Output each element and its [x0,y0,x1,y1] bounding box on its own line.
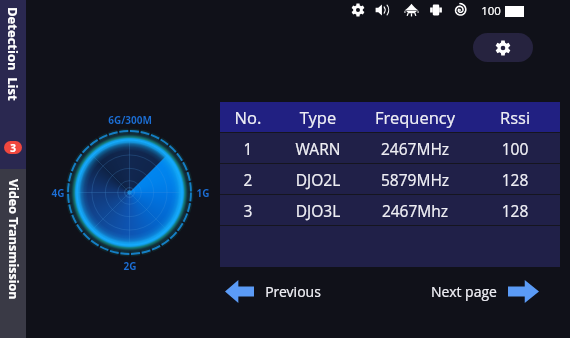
staticText: Frequency [360,106,470,128]
staticText: 3 [220,200,276,221]
staticText: 5879MHz [360,169,470,190]
staticText: 1G [191,186,215,200]
button[interactable] [0,0,26,169]
button[interactable] [0,169,26,338]
staticText: 128 [470,200,560,221]
staticText: Rssi [470,106,560,128]
staticText: 4G [46,186,70,200]
staticText: Type [276,106,360,128]
staticText: 100 [481,3,501,17]
button[interactable]: Next page [431,278,539,304]
button[interactable]: 3 [220,195,560,225]
staticText: 100 [470,138,560,159]
staticText: DJO3L [276,200,360,221]
staticText: Next page [431,282,497,301]
staticText: 2 [220,169,276,190]
staticText: 6G/300M [104,113,156,127]
button[interactable]: 2 [220,164,560,194]
staticText: No. [220,106,276,128]
staticText: 1 [220,138,276,159]
staticText: 128 [470,169,560,190]
button[interactable]: Settings [473,33,533,62]
staticText: Previous [265,282,321,301]
staticText: 2467Mhz [360,200,470,221]
button[interactable]: 1 [220,133,560,163]
button[interactable]: Previous [225,278,321,304]
staticText: DJO2L [276,169,360,190]
staticText: 2467MHz [360,138,470,159]
staticText: 3 [10,141,16,154]
staticText: 2G [118,259,142,273]
staticText: WARN [276,138,360,159]
